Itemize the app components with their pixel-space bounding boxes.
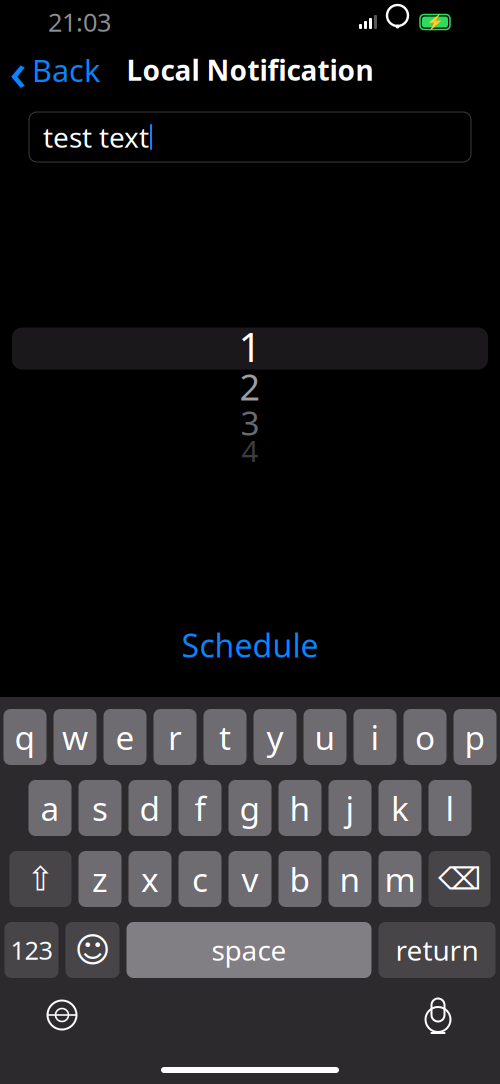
- staticText: v: [241, 857, 258, 901]
- button[interactable]: d: [128, 780, 171, 836]
- button[interactable]: Next keyboard: [39, 992, 85, 1038]
- staticText: u: [314, 715, 335, 759]
- button[interactable]: k: [378, 780, 421, 836]
- staticText: 4: [241, 431, 258, 470]
- button[interactable]: space: [126, 922, 371, 978]
- button[interactable]: i: [353, 709, 396, 765]
- staticText: ⇧: [26, 860, 54, 898]
- button[interactable]: y: [253, 709, 296, 765]
- staticText: Schedule: [181, 624, 318, 666]
- button[interactable]: q: [3, 709, 46, 765]
- button[interactable]: 123: [4, 922, 58, 978]
- button[interactable]: Emoji: [65, 922, 119, 978]
- button[interactable]: Schedule: [0, 625, 500, 665]
- staticText: m: [384, 857, 415, 901]
- button[interactable]: r: [153, 709, 196, 765]
- button[interactable]: w: [53, 709, 96, 765]
- staticText: l: [445, 786, 454, 830]
- button[interactable]: l: [428, 780, 471, 836]
- button[interactable]: t: [203, 709, 246, 765]
- button[interactable]: m: [378, 851, 421, 907]
- button[interactable]: n: [328, 851, 371, 907]
- staticText: a: [40, 786, 59, 830]
- staticText: ⌫: [438, 862, 481, 896]
- staticText: ‹: [9, 35, 26, 105]
- staticText: y: [266, 715, 283, 759]
- staticText: b: [289, 857, 310, 901]
- button[interactable]: h: [278, 780, 321, 836]
- staticText: s: [92, 786, 108, 830]
- staticText: g: [239, 786, 260, 830]
- staticText: 21:03: [48, 5, 111, 39]
- staticText: space: [211, 931, 286, 969]
- staticText: ☺: [74, 930, 110, 970]
- staticText: e: [115, 715, 134, 759]
- button[interactable]: s: [78, 780, 121, 836]
- button[interactable]: Delete: [428, 851, 490, 907]
- button[interactable]: u: [303, 709, 346, 765]
- button[interactable]: c: [178, 851, 221, 907]
- button[interactable]: o: [403, 709, 446, 765]
- button[interactable]: ‹: [0, 48, 110, 92]
- staticText: f: [194, 786, 205, 830]
- staticText: 2: [239, 363, 260, 410]
- button[interactable]: b: [278, 851, 321, 907]
- staticText: j: [345, 786, 354, 830]
- staticText: 123: [10, 933, 52, 967]
- staticText: t: [219, 715, 231, 759]
- button[interactable]: return: [378, 922, 495, 978]
- staticText: r: [168, 715, 182, 759]
- button[interactable]: Dictation: [415, 992, 461, 1038]
- staticText: x: [141, 857, 159, 901]
- staticText: h: [289, 786, 310, 830]
- staticText: 3: [240, 400, 259, 445]
- staticText: 1: [238, 320, 261, 373]
- staticText: return: [395, 931, 478, 969]
- staticText: Local Notification: [126, 51, 373, 89]
- staticText: i: [370, 715, 379, 759]
- staticText: w: [62, 715, 88, 759]
- staticText: ⚡: [426, 14, 444, 30]
- staticText: k: [391, 786, 409, 830]
- staticText: d: [139, 786, 160, 830]
- button[interactable]: v: [228, 851, 271, 907]
- staticText: n: [339, 857, 360, 901]
- button[interactable]: e: [103, 709, 146, 765]
- staticText: c: [192, 857, 208, 901]
- button[interactable]: g: [228, 780, 271, 836]
- button[interactable]: a: [28, 780, 71, 836]
- staticText: test text: [43, 118, 149, 156]
- button[interactable]: p: [453, 709, 496, 765]
- button[interactable]: Shift: [9, 851, 71, 907]
- staticText: Back: [32, 50, 100, 90]
- button[interactable]: x: [128, 851, 171, 907]
- staticText: p: [464, 715, 485, 759]
- staticText: o: [415, 715, 435, 759]
- button[interactable]: j: [328, 780, 371, 836]
- button[interactable]: f: [178, 780, 221, 836]
- staticText: z: [92, 857, 108, 901]
- button[interactable]: z: [78, 851, 121, 907]
- staticText: q: [14, 715, 35, 759]
